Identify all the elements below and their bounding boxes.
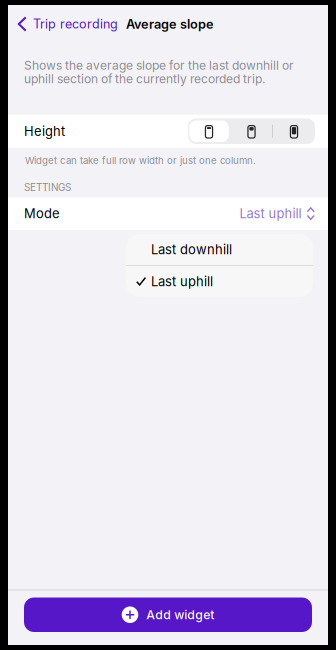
staticText: Widget can take full row width or just o… [25, 155, 256, 166]
staticText: Last uphill [239, 206, 301, 221]
staticText: Average slope [126, 16, 214, 32]
staticText: Trip recording [33, 16, 118, 32]
staticText: SETTINGS [24, 181, 71, 193]
button[interactable]: Medium widget height [230, 118, 273, 144]
button[interactable]: Last downhill [126, 234, 313, 265]
button[interactable]: Last uphill [126, 266, 313, 297]
staticText: Height [24, 123, 65, 139]
staticText: Shows the average slope for the last dow… [24, 58, 294, 86]
button[interactable]: Add widget [24, 597, 312, 632]
staticText: Last downhill [151, 242, 232, 257]
staticText: Last uphill [151, 274, 213, 289]
button[interactable]: Trip recording [8, 5, 122, 43]
button[interactable]: Large widget height [273, 118, 315, 144]
button[interactable]: Mode [8, 197, 328, 230]
staticText: Add widget [146, 607, 214, 622]
button[interactable]: Small widget height [188, 118, 230, 144]
staticText: Mode [24, 206, 60, 221]
